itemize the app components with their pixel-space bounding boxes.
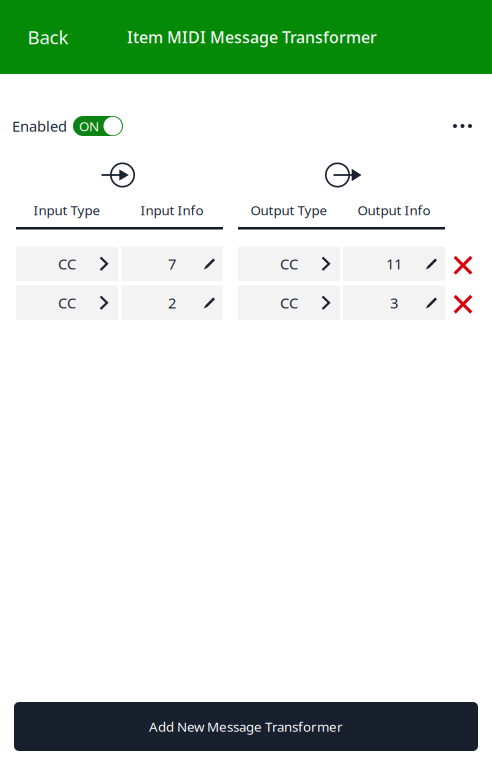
button[interactable]: CC	[238, 246, 340, 281]
staticText: Input Type	[33, 201, 100, 219]
staticText: Back	[27, 25, 68, 49]
staticText: 2	[168, 293, 176, 312]
button[interactable]: Delete second message transformer	[445, 287, 481, 321]
button[interactable]: 7	[121, 246, 223, 281]
button[interactable]: ON	[73, 116, 123, 136]
button[interactable]: More options	[443, 114, 482, 138]
staticText: 11	[386, 254, 402, 273]
staticText: CC	[280, 254, 298, 273]
staticText: CC	[58, 293, 76, 312]
staticText: Output Info	[357, 201, 430, 219]
button[interactable]: CC	[16, 285, 118, 320]
staticText: Input Info	[140, 201, 203, 219]
staticText: CC	[58, 254, 76, 273]
button[interactable]: 2	[121, 285, 223, 320]
button[interactable]: CC	[16, 246, 118, 281]
staticText: Output Type	[250, 201, 327, 219]
button[interactable]: Back	[18, 15, 78, 59]
staticText: Add New Message Transformer	[149, 718, 343, 735]
staticText: Enabled	[12, 116, 67, 136]
button[interactable]: CC	[238, 285, 340, 320]
staticText: CC	[280, 293, 298, 312]
button[interactable]: Add New Message Transformer	[14, 702, 478, 751]
button[interactable]: Delete first message transformer	[445, 248, 481, 282]
button[interactable]: 3	[343, 285, 445, 320]
staticText: 3	[390, 293, 398, 312]
staticText: Item MIDI Message Transformer	[127, 26, 377, 48]
staticText: 7	[168, 254, 176, 273]
staticText: ON	[79, 117, 99, 135]
button[interactable]: 11	[343, 246, 445, 281]
